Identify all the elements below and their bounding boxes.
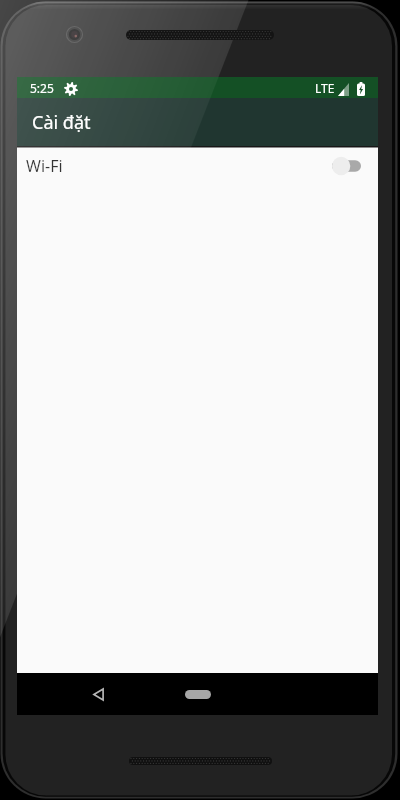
button[interactable]: Wi-Fi [17, 148, 378, 183]
staticText: LTE [315, 80, 335, 96]
button[interactable]: Home [176, 679, 220, 709]
button[interactable]: Wi-Fi toggle [332, 154, 361, 178]
staticText: 5:25 [30, 80, 54, 96]
button[interactable]: Back [82, 678, 114, 710]
staticText: Cài đặt [32, 110, 91, 135]
staticText: Wi-Fi [26, 155, 63, 177]
